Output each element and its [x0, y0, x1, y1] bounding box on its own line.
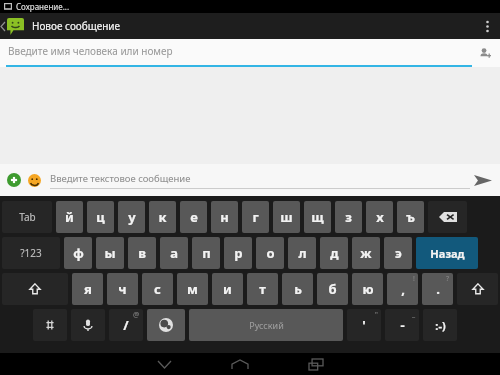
button[interactable]: , — [387, 273, 418, 305]
staticText: э — [395, 244, 402, 262]
staticText: г — [252, 208, 259, 226]
button[interactable]: Русский — [189, 309, 343, 341]
button[interactable]: т — [247, 273, 278, 305]
staticText: / — [123, 316, 129, 334]
staticText: . — [436, 280, 440, 298]
button[interactable]: Recent apps — [278, 353, 354, 375]
button[interactable]: н — [211, 201, 238, 233]
button[interactable]: Назад — [416, 237, 478, 269]
staticText: з — [345, 208, 352, 226]
button[interactable]: Emoji — [24, 170, 44, 190]
button[interactable]: ю — [352, 273, 383, 305]
staticText: и — [223, 280, 232, 298]
button[interactable]: л — [288, 237, 316, 269]
button[interactable]: ш — [273, 201, 300, 233]
button[interactable]: и — [212, 273, 243, 305]
staticText: р — [234, 244, 243, 262]
button[interactable]: м — [177, 273, 208, 305]
staticText: о — [266, 244, 275, 262]
button[interactable]: Send — [466, 164, 500, 196]
button[interactable]: ж — [352, 237, 380, 269]
button[interactable]: Back — [126, 353, 202, 375]
staticText: д — [330, 244, 339, 262]
staticText: ?123 — [20, 246, 42, 260]
button[interactable]: а — [160, 237, 188, 269]
button[interactable]: Voice input — [71, 309, 105, 341]
staticText: ч — [118, 280, 127, 298]
staticText: _ — [412, 310, 416, 320]
staticText: ь — [294, 280, 302, 298]
button[interactable]: р — [224, 237, 252, 269]
button[interactable]: - — [385, 309, 419, 341]
button[interactable]: о — [256, 237, 284, 269]
button[interactable]: ы — [96, 237, 124, 269]
staticText: м — [187, 280, 198, 298]
button[interactable]: у — [118, 201, 145, 233]
button[interactable]: ь — [282, 273, 313, 305]
button[interactable]: п — [192, 237, 220, 269]
staticText: б — [328, 280, 337, 298]
staticText: Tab — [19, 210, 36, 224]
button[interactable]: . — [422, 273, 453, 305]
staticText: - — [400, 316, 405, 334]
button[interactable]: :-) — [423, 309, 457, 341]
staticText: п — [202, 244, 211, 262]
button[interactable]: Add contact — [470, 39, 500, 67]
button[interactable]: More options — [474, 13, 500, 39]
staticText: :-) — [435, 318, 446, 333]
staticText: ъ — [406, 208, 415, 226]
button[interactable]: ъ — [397, 201, 424, 233]
button[interactable]: щ — [304, 201, 331, 233]
staticText: й — [65, 208, 74, 226]
staticText: ш — [280, 208, 293, 226]
button[interactable]: э — [384, 237, 412, 269]
button[interactable]: ф — [64, 237, 92, 269]
staticText: " — [375, 310, 378, 320]
staticText: в — [138, 244, 146, 262]
staticText: у — [128, 208, 136, 226]
button[interactable]: Attach — [4, 170, 24, 190]
staticText: к — [158, 208, 167, 226]
staticText: щ — [311, 208, 324, 226]
button[interactable]: б — [317, 273, 348, 305]
button[interactable]: Up — [0, 13, 24, 39]
button[interactable]: в — [128, 237, 156, 269]
staticText: Новое сообщение — [32, 19, 121, 33]
button[interactable]: ц — [87, 201, 114, 233]
button[interactable]: е — [180, 201, 207, 233]
staticText: ? — [446, 274, 450, 284]
button[interactable]: ч — [107, 273, 138, 305]
button[interactable]: ?123 — [2, 237, 60, 269]
button[interactable]: Shift — [457, 273, 498, 305]
button[interactable]: к — [149, 201, 176, 233]
staticText: @ — [133, 310, 140, 320]
staticText: Введите имя человека или номер — [8, 44, 173, 58]
staticText: , — [401, 280, 405, 298]
button[interactable]: Home — [202, 353, 278, 375]
staticText: х — [376, 208, 384, 226]
staticText: ! — [413, 274, 415, 284]
button[interactable]: й — [56, 201, 83, 233]
staticText: ф — [73, 244, 84, 262]
button[interactable]: Shift — [2, 273, 68, 305]
button[interactable]: Language — [147, 309, 185, 341]
button[interactable]: с — [142, 273, 173, 305]
staticText: т — [259, 280, 266, 298]
staticText: ю — [362, 280, 374, 298]
button[interactable]: Settings — [33, 309, 67, 341]
button[interactable]: х — [366, 201, 393, 233]
staticText: ы — [104, 244, 116, 262]
button[interactable]: / — [109, 309, 143, 341]
button[interactable]: Backspace — [428, 201, 467, 233]
staticText: я — [84, 280, 92, 298]
staticText: Русский — [249, 319, 284, 331]
staticText: ' — [362, 316, 366, 334]
button[interactable]: з — [335, 201, 362, 233]
button[interactable]: Tab — [2, 201, 52, 233]
button[interactable]: я — [72, 273, 103, 305]
button[interactable]: д — [320, 237, 348, 269]
button[interactable]: г — [242, 201, 269, 233]
staticText: Сохранение... — [16, 1, 70, 12]
button[interactable]: ' — [347, 309, 381, 341]
staticText: а — [170, 244, 178, 262]
